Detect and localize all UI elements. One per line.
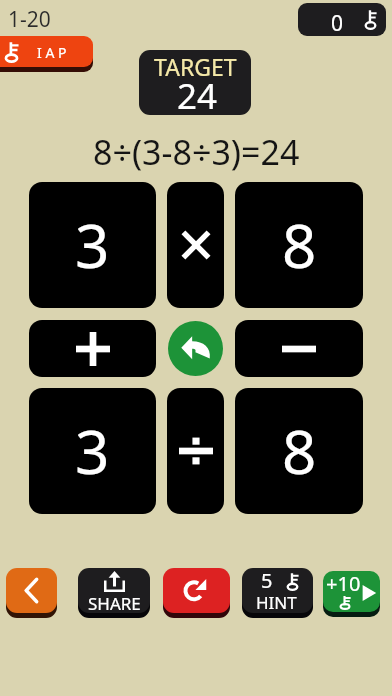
button[interactable]: I A P: [0, 36, 93, 67]
staticText: TARGET: [154, 51, 237, 82]
button[interactable]: Minus: [235, 320, 363, 377]
button[interactable]: TARGET: [139, 50, 251, 115]
button[interactable]: Undo: [167, 320, 224, 377]
staticText: 8: [282, 204, 317, 286]
button[interactable]: 3: [29, 182, 156, 308]
staticText: 8÷(3-8÷3)=24: [93, 129, 300, 175]
button[interactable]: +10: [323, 571, 380, 612]
staticText: +10: [326, 571, 361, 597]
button[interactable]: 0: [298, 3, 386, 36]
staticText: I A P: [37, 43, 67, 62]
staticText: HINT: [256, 591, 297, 613]
staticText: 0: [331, 9, 344, 36]
staticText: 5: [261, 568, 273, 594]
button[interactable]: 5: [242, 568, 313, 613]
button[interactable]: 8: [235, 388, 363, 514]
button[interactable]: Multiply: [167, 182, 224, 308]
button[interactable]: 8: [235, 182, 363, 308]
button[interactable]: 3: [29, 388, 156, 514]
staticText: 24: [177, 72, 218, 115]
staticText: 8: [282, 410, 317, 492]
button[interactable]: Divide: [167, 388, 224, 514]
button[interactable]: SHARE: [78, 568, 150, 613]
staticText: 3: [75, 410, 110, 492]
staticText: SHARE: [88, 592, 141, 613]
button[interactable]: Back: [6, 568, 57, 613]
staticText: 1-20: [8, 5, 51, 34]
button[interactable]: Reset: [163, 568, 230, 613]
staticText: 3: [75, 204, 110, 286]
button[interactable]: Plus: [29, 320, 156, 377]
